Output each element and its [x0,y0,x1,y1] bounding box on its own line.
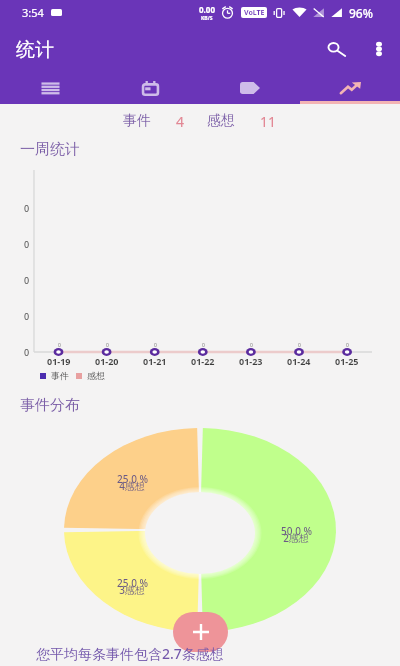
button[interactable]: Tags [200,72,300,104]
staticText: 25.0 % [117,472,148,486]
staticText: 0 [24,274,30,286]
staticText: 统计 [16,38,54,62]
staticText: 4感想 [119,479,145,493]
staticText: 01-19 [47,355,71,367]
staticText: 4 [176,112,185,131]
staticText: 3:54 [22,5,44,20]
staticText: 96% [349,5,373,21]
staticText: 您平均每条事件包含2.7条感想 [36,644,224,663]
staticText: 3感想 [119,583,145,597]
staticText: 0 [106,342,109,349]
button[interactable]: Timeline [0,72,100,104]
staticText: 11 [260,112,277,131]
staticText: 2感想 [283,531,309,545]
staticText: 0 [250,342,253,349]
staticText: 0 [24,346,30,358]
staticText: 0 [24,202,30,214]
staticText: 一周统计 [20,140,80,159]
staticText: 01-24 [287,355,311,367]
staticText: 01-22 [191,355,215,367]
staticText: 0 [24,310,30,322]
staticText: VoLTE [244,8,265,18]
button[interactable]: Statistics [300,72,400,104]
staticText: 01-23 [239,355,263,367]
staticText: 感想 [207,112,235,130]
staticText: 感想 [87,370,105,381]
staticText: 50.0 % [281,524,312,538]
staticText: 25.0 % [117,576,148,590]
staticText: KB/S [201,15,213,22]
staticText: 0.00 [199,4,215,15]
staticText: 01-20 [95,355,119,367]
button[interactable]: Search [317,27,362,72]
staticText: 0 [202,342,205,349]
button[interactable]: More options [358,28,399,69]
staticText: 事件 [51,370,69,381]
staticText: 事件 [123,112,151,130]
staticText: 0 [346,342,349,349]
staticText: 01-21 [143,355,167,367]
staticText: 0 [154,342,157,349]
button[interactable]: Calendar [100,72,200,104]
staticText: 0 [24,238,30,250]
staticText: 事件分布 [20,396,80,415]
button[interactable]: Add [173,612,228,652]
staticText: 0 [58,342,61,349]
staticText: 01-25 [335,355,359,367]
staticText: 0 [298,342,301,349]
